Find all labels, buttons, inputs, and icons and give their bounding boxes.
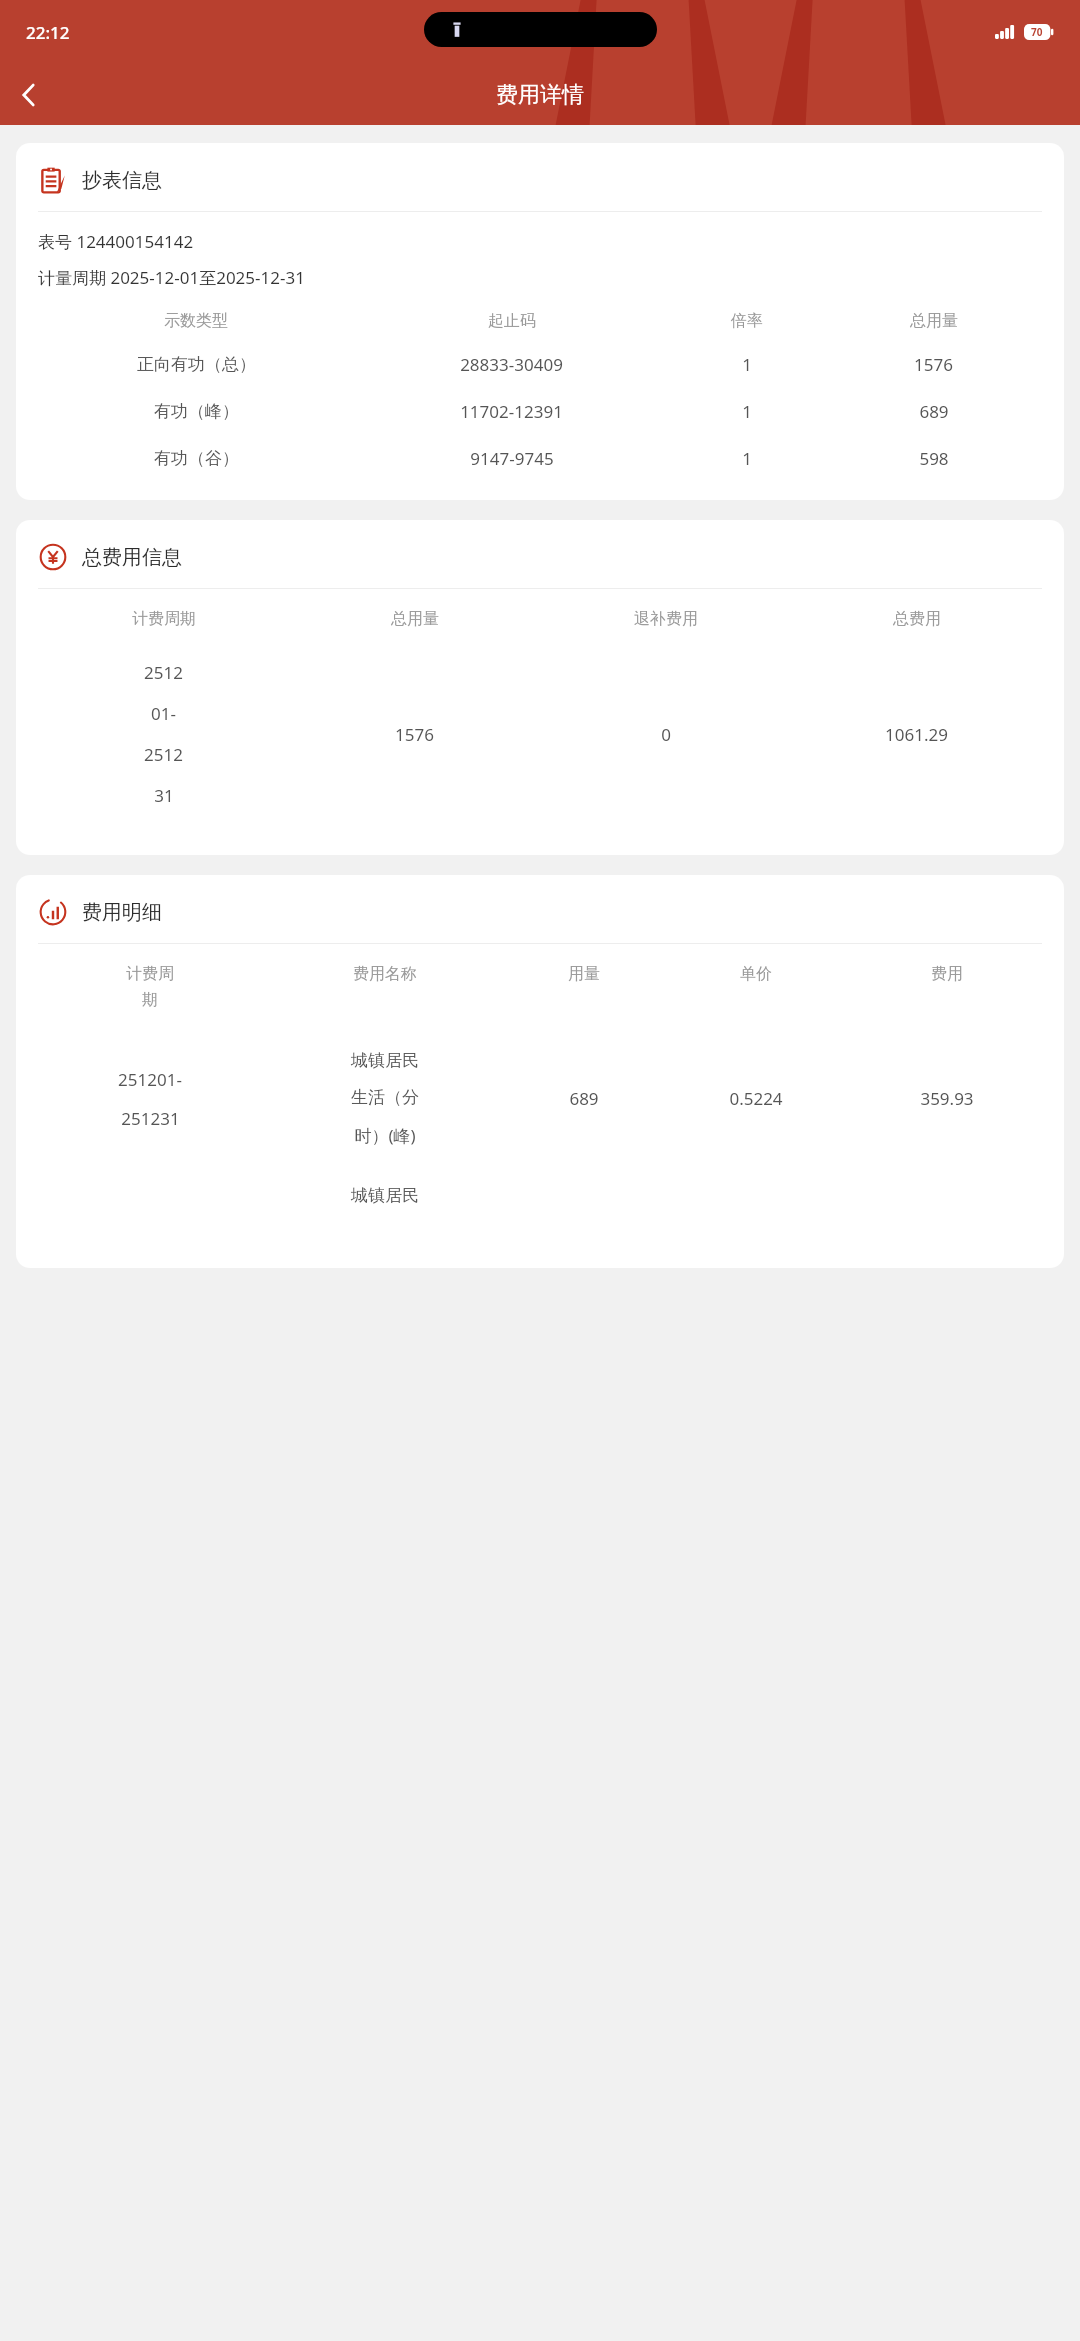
staticText: 示数类型: [164, 311, 228, 331]
staticText: 22:12: [26, 21, 70, 44]
staticText: 生活（分: [351, 1087, 419, 1108]
staticText: 用量: [568, 964, 600, 984]
staticText: 起止码: [488, 311, 536, 331]
staticText: 费用: [931, 964, 963, 984]
staticText: 计费周 期: [126, 964, 174, 1010]
staticText: 费用名称: [353, 964, 417, 984]
staticText: 抄表信息: [82, 168, 162, 193]
staticText: 总费用: [893, 609, 941, 629]
staticText: 251231: [121, 1107, 180, 1130]
staticText: 城镇居民: [351, 1185, 419, 1206]
staticText: 退补费用: [634, 609, 698, 629]
staticText: 01-: [151, 702, 176, 725]
staticText: 1: [742, 353, 752, 376]
staticText: 0.5224: [729, 1087, 783, 1110]
staticText: 1: [742, 447, 752, 470]
staticText: 70: [1031, 25, 1043, 39]
staticText: 1576: [914, 353, 953, 376]
staticText: 总用量: [391, 609, 439, 629]
staticText: 2512: [144, 661, 183, 684]
button[interactable]: Back: [0, 66, 58, 124]
staticText: 9147-9745: [470, 447, 554, 470]
staticText: 689: [919, 400, 949, 423]
staticText: 正向有功（总）: [137, 354, 256, 375]
staticText: 0: [661, 723, 671, 746]
staticText: 单价: [740, 964, 772, 984]
staticText: 有功（峰）: [154, 401, 239, 422]
staticText: 总费用信息: [82, 545, 182, 570]
staticText: 251201-: [118, 1068, 182, 1091]
staticText: 时）(峰): [354, 1124, 416, 1147]
staticText: 2512: [144, 743, 183, 766]
staticText: 费用明细: [82, 900, 162, 925]
staticText: 倍率: [731, 311, 763, 331]
staticText: 计量周期 2025-12-01至2025-12-31: [38, 266, 305, 289]
staticText: 11702-12391: [460, 400, 563, 423]
staticText: 计费周期: [132, 609, 196, 629]
staticText: 1061.29: [885, 723, 948, 746]
staticText: 359.93: [920, 1087, 974, 1110]
staticText: 1576: [395, 723, 434, 746]
staticText: 费用详情: [496, 81, 584, 109]
staticText: 598: [919, 447, 949, 470]
staticText: 表号 124400154142: [38, 230, 194, 253]
staticText: 1: [742, 400, 752, 423]
staticText: 有功（谷）: [154, 448, 239, 469]
staticText: 总用量: [910, 311, 958, 331]
staticText: 31: [154, 784, 174, 807]
staticText: 城镇居民: [351, 1050, 419, 1071]
staticText: 689: [569, 1087, 599, 1110]
staticText: 28833-30409: [460, 353, 563, 376]
